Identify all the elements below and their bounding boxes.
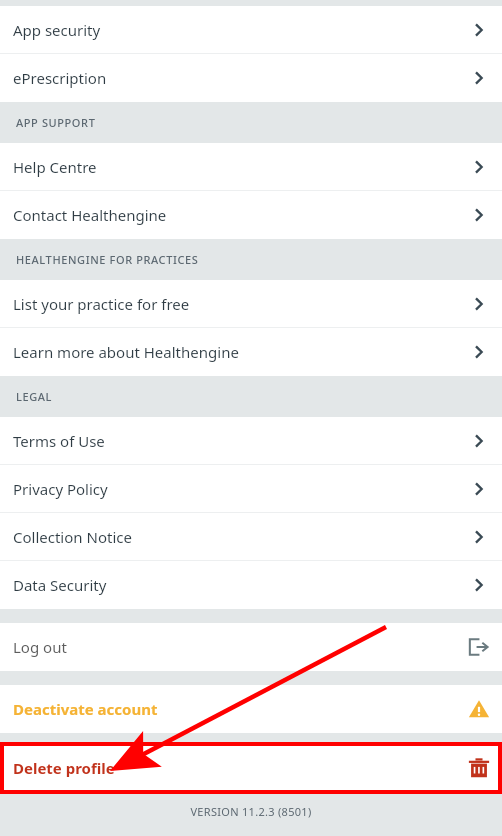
staticText: ePrescription [13,68,107,88]
staticText: Contact Healthengine [13,205,167,225]
staticText: Terms of Use [13,431,105,451]
button[interactable]: List your practice for free [0,280,502,328]
other: Warning [468,698,490,720]
button[interactable]: Data Security [0,561,502,609]
button[interactable]: Learn more about Healthengine [0,328,502,376]
staticText: Delete profile [13,758,115,778]
button[interactable]: Delete profile [0,744,502,792]
staticText: APP SUPPORT [16,115,96,130]
staticText: VERSION 11.2.3 (8501) [190,804,312,819]
staticText: Data Security [13,575,107,595]
staticText: LEGAL [16,389,53,404]
staticText: Collection Notice [13,527,132,547]
staticText: List your practice for free [13,294,190,314]
staticText: App security [13,20,101,40]
button[interactable]: App security [0,6,502,54]
button[interactable]: ePrescription [0,54,502,102]
button[interactable]: Contact Healthengine [0,191,502,239]
button[interactable]: Deactivate account [0,685,502,733]
button[interactable]: Terms of Use [0,417,502,465]
other: Delete profile [468,757,490,779]
button[interactable]: Collection Notice [0,513,502,561]
staticText: Privacy Policy [13,479,108,499]
button[interactable]: Privacy Policy [0,465,502,513]
button[interactable]: Log out [0,623,502,671]
staticText: Log out [13,637,67,657]
other: Log out [466,635,490,659]
staticText: Deactivate account [13,699,158,719]
staticText: HEALTHENGINE FOR PRACTICES [16,252,199,267]
staticText: Learn more about Healthengine [13,342,239,362]
staticText: Help Centre [13,157,97,177]
button[interactable]: Help Centre [0,143,502,191]
